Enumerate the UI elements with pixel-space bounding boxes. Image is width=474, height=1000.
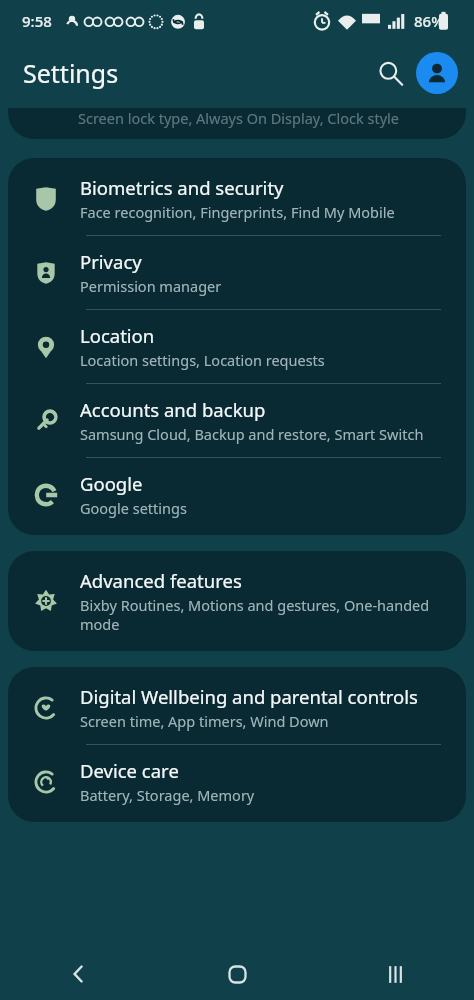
- staticText: Accounts and backup: [80, 397, 266, 422]
- staticText: Device care: [80, 758, 179, 783]
- staticText: Bixby Routines, Motions and gestures, On…: [80, 595, 448, 634]
- button[interactable]: Home: [158, 948, 316, 1000]
- button[interactable]: Google: [8, 458, 466, 531]
- button[interactable]: Screen lock type, Always On Display, Clo…: [8, 108, 466, 139]
- staticText: Location settings, Location requests: [80, 350, 325, 370]
- staticText: Location: [80, 323, 155, 348]
- staticText: Screen lock type, Always On Display, Clo…: [78, 108, 399, 128]
- button[interactable]: Location: [8, 310, 466, 383]
- staticText: Google settings: [80, 498, 187, 518]
- staticText: Permission manager: [80, 276, 222, 296]
- staticText: Advanced features: [80, 568, 242, 593]
- button[interactable]: Privacy: [8, 236, 466, 309]
- staticText: 9:58: [22, 11, 52, 31]
- button[interactable]: Back: [0, 948, 158, 1000]
- staticText: 86%: [414, 11, 444, 31]
- staticText: Biometrics and security: [80, 175, 284, 200]
- button[interactable]: Accounts and backup: [8, 384, 466, 457]
- button[interactable]: Biometrics and security: [8, 162, 466, 235]
- staticText: Screen time, App timers, Wind Down: [80, 711, 329, 731]
- button[interactable]: Recents: [316, 948, 474, 1000]
- staticText: Battery, Storage, Memory: [80, 785, 255, 805]
- staticText: Google: [80, 471, 143, 496]
- staticText: Samsung Cloud, Backup and restore, Smart…: [80, 424, 424, 444]
- button[interactable]: Device care: [8, 745, 466, 818]
- staticText: Privacy: [80, 249, 142, 274]
- button[interactable]: Advanced features: [8, 555, 466, 647]
- button[interactable]: Digital Wellbeing and parental controls: [8, 671, 466, 744]
- staticText: Face recognition, Fingerprints, Find My …: [80, 202, 395, 222]
- staticText: Settings: [23, 56, 119, 90]
- button[interactable]: Search: [368, 51, 412, 95]
- staticText: Digital Wellbeing and parental controls: [80, 684, 418, 709]
- button[interactable]: Account: [416, 52, 458, 94]
